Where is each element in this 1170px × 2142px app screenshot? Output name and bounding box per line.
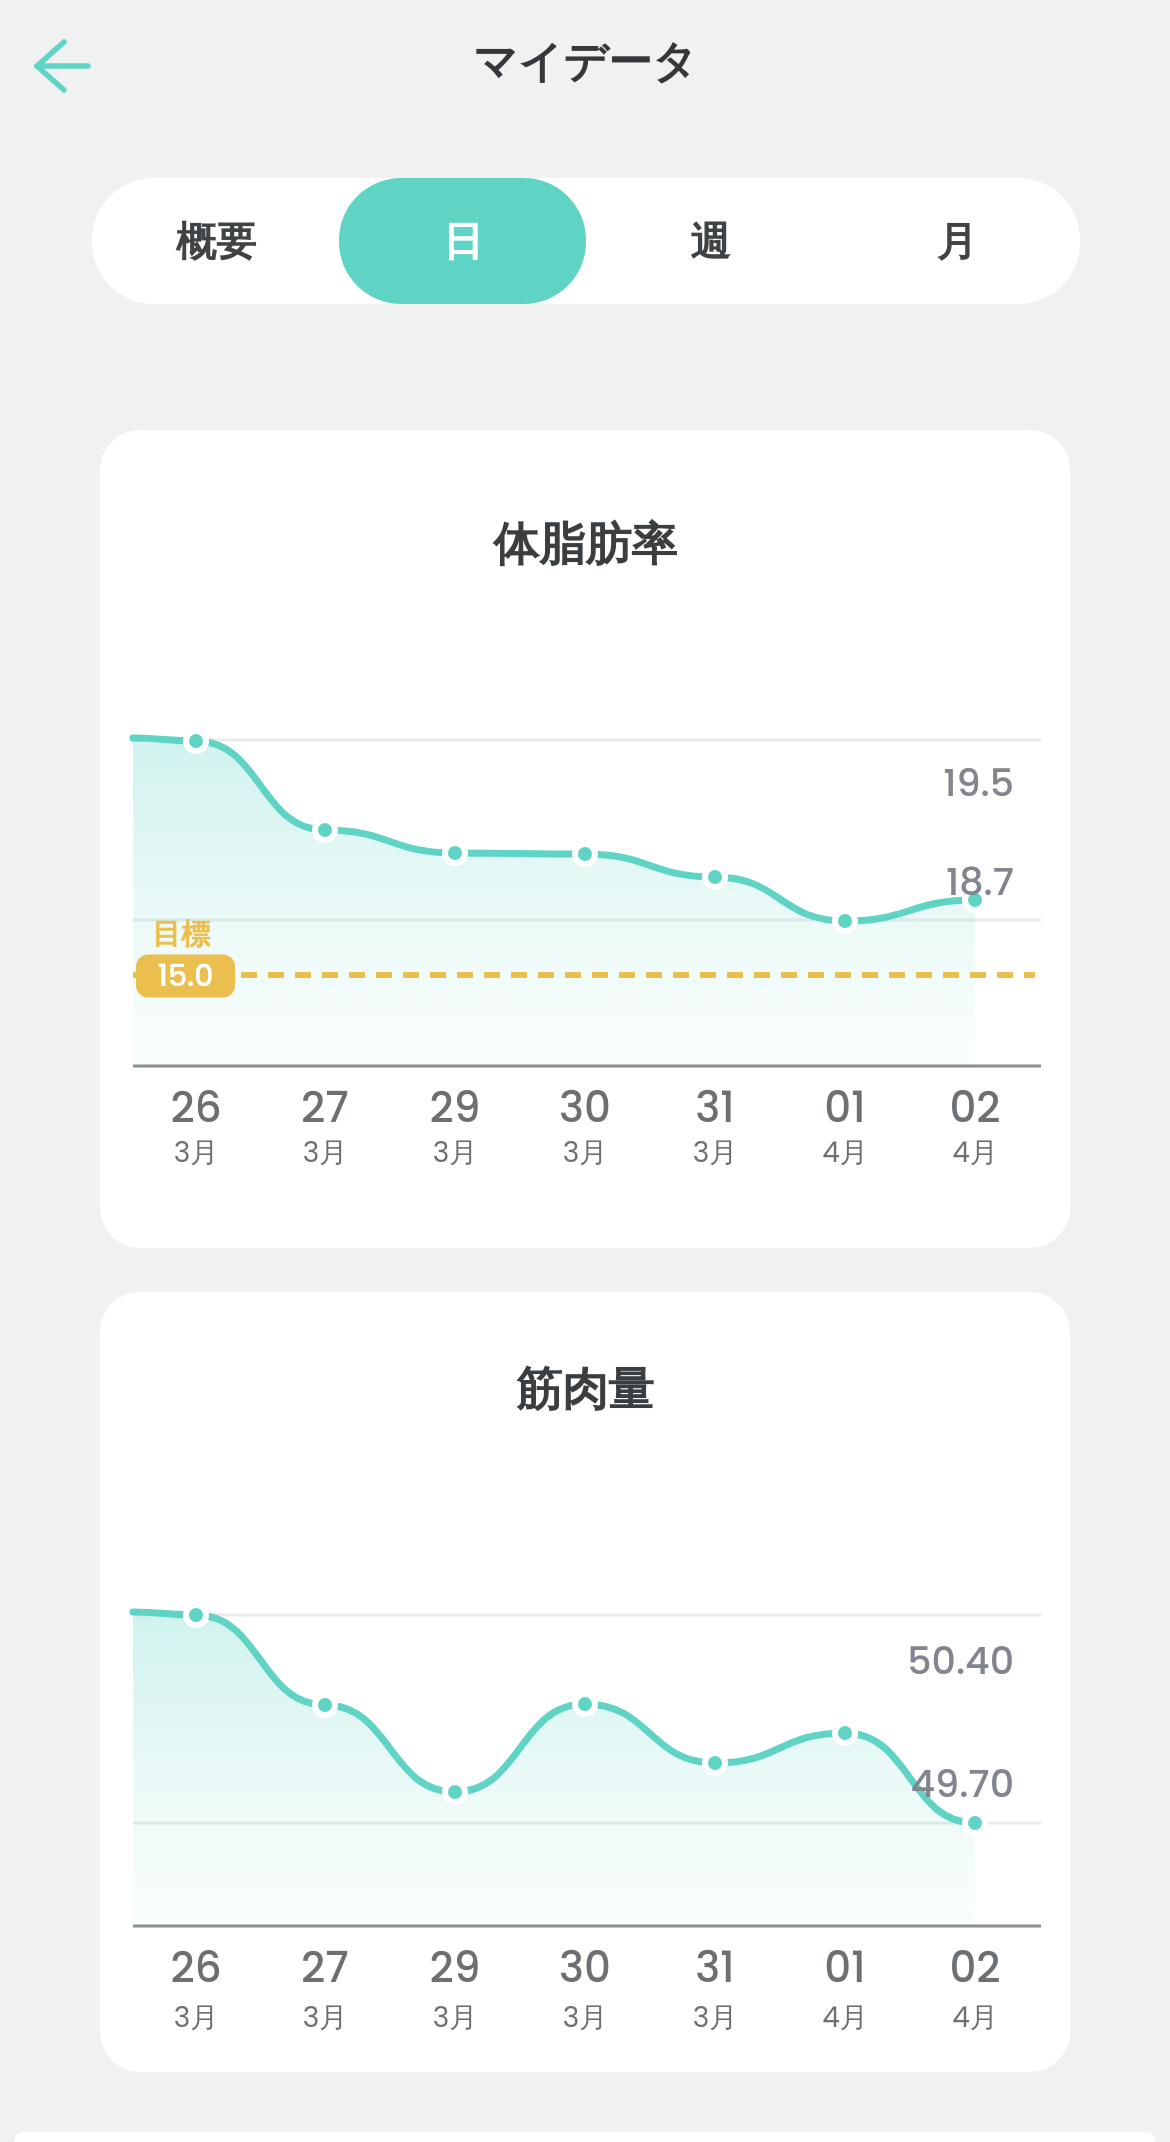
staticText: 体脂肪率 [100,516,1070,574]
staticText: 27 [260,1078,390,1137]
staticText: マイデータ [0,35,1170,90]
staticText: 4月 [910,1133,1040,1172]
staticText: 3月 [520,1133,650,1172]
staticText: 目標 [152,916,262,953]
staticText: 29 [390,1938,520,1997]
staticText: 49.70 [794,1757,1014,1810]
staticText: 4月 [910,1998,1040,2037]
staticText: 29 [390,1078,520,1137]
staticText: 30 [520,1078,650,1137]
staticText: 31 [650,1938,780,1997]
staticText: 3月 [390,1133,520,1172]
staticText: 3月 [260,1998,390,2037]
staticText: 26 [131,1938,261,1997]
button[interactable]: 日 [339,178,586,304]
staticText: 01 [780,1938,910,1997]
staticText: 概要 [176,216,256,266]
staticText: 3月 [131,1133,261,1172]
staticText: 日 [443,216,483,266]
staticText: 27 [260,1938,390,1997]
staticText: 19.5 [794,756,1014,809]
button[interactable]: 週 [586,178,833,304]
staticText: 4月 [780,1133,910,1172]
staticText: 筋肉量 [100,1361,1070,1419]
staticText: 3月 [650,1133,780,1172]
staticText: 18.7 [794,855,1014,908]
staticText: 週 [690,216,730,266]
staticText: 50.40 [794,1634,1014,1687]
staticText: 3月 [390,1998,520,2037]
staticText: 3月 [650,1998,780,2037]
staticText: 31 [650,1078,780,1137]
button[interactable]: 概要 [92,178,339,304]
staticText: 26 [131,1078,261,1137]
staticText: 15.0 [136,955,235,997]
staticText: 3月 [260,1133,390,1172]
staticText: 3月 [520,1998,650,2037]
staticText: 4月 [780,1998,910,2037]
staticText: 02 [910,1938,1040,1997]
button[interactable] [22,30,102,100]
staticText: 3月 [131,1998,261,2037]
staticText: 月 [937,216,977,266]
staticText: 30 [520,1938,650,1997]
staticText: 01 [780,1078,910,1137]
staticText: 02 [910,1078,1040,1137]
button[interactable]: 月 [833,178,1080,304]
